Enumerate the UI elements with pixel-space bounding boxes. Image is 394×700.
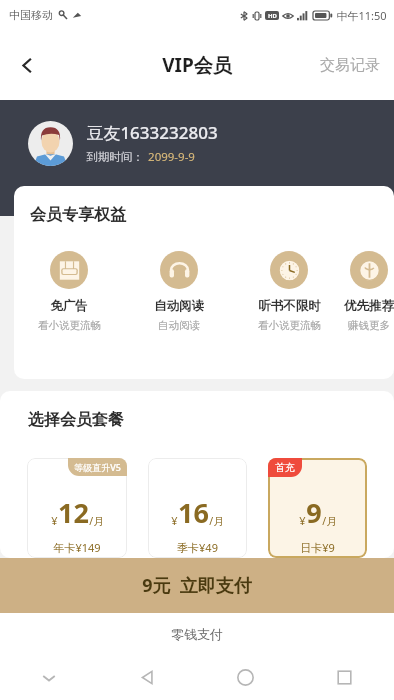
staticText: 9元 立即支付 [142,573,252,598]
staticText: 看小说更流畅 [258,319,321,332]
button[interactable]: 自动阅读 [124,251,234,332]
staticText: HD [268,12,277,20]
staticText: 12 [58,494,89,531]
staticText: 中国移动 [9,8,53,22]
button[interactable]: Home [196,655,295,700]
staticText: 会员专享权益 [30,205,126,225]
staticText: 年卡¥149 [53,540,101,555]
button[interactable]: ¥ [268,458,367,558]
staticText: 日卡¥9 [300,540,335,555]
staticText: ¥ [171,513,178,528]
staticText: ¥ [299,513,306,528]
staticText: /月 [209,514,224,528]
button[interactable]: Back [98,655,196,700]
staticText: 免广告 [50,298,88,314]
button[interactable]: ¥ [148,458,247,558]
staticText: 豆友1633232803 [86,121,218,144]
staticText: 优先推荐 [344,298,394,314]
staticText: 零钱支付 [171,626,223,642]
staticText: /月 [322,514,337,528]
staticText: 16 [178,494,209,531]
staticText: 赚钱更多 [348,319,390,332]
staticText: 选择会员套餐 [28,410,124,430]
button[interactable]: Back [5,43,49,87]
staticText: 季卡¥49 [177,540,218,555]
staticText: 首充 [275,461,295,474]
staticText: 到期时间： [86,150,144,164]
staticText: ¥ [51,513,58,528]
button[interactable]: 优先推荐 [344,251,394,332]
staticText: 听书不限时 [258,298,321,314]
staticText: /月 [89,514,104,528]
button[interactable]: Recent apps [295,655,394,700]
staticText: VIP会员 [162,52,232,78]
staticText: 看小说更流畅 [38,319,101,332]
button[interactable]: 免广告 [14,251,124,332]
button[interactable]: Hide keyboard [0,655,98,700]
staticText: 自动阅读 [154,298,204,314]
button[interactable]: 9元 立即支付 [0,558,394,613]
staticText: 等级直升V5 [74,461,121,473]
staticText: 自动阅读 [158,319,200,332]
staticText: 中午11:50 [336,8,387,23]
staticText: 交易记录 [320,56,380,75]
staticText: 2099-9-9 [148,149,195,165]
button[interactable]: ¥ [27,458,127,558]
button[interactable]: 听书不限时 [234,251,344,332]
button[interactable]: 交易记录 [316,48,384,83]
staticText: 9 [306,494,322,531]
